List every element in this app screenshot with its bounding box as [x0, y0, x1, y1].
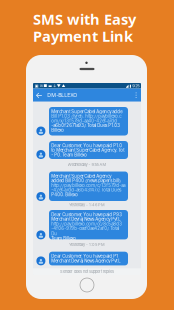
staticText: 9:25: [132, 83, 139, 88]
staticText: http://pay.billexo.com/cc/8c5a8d3: [51, 221, 122, 226]
staticText: -42ef-a7dd-a6b43f477/. Total Dues: [51, 187, 121, 193]
staticText: Yesterday - 1:46 PM: [69, 202, 105, 207]
staticText: DM-BLLEXO: [47, 92, 77, 98]
staticText: -a6b0f2671a93/. Total Dues P1.03: [51, 123, 120, 128]
staticText: -4f06-979b-ceef0ae42af0/. Total Du: [51, 226, 119, 236]
staticText: Merchant SuperCabel Agency adde: [51, 109, 122, 114]
staticText: Merchant Devraj News Agency Pvt L: [51, 258, 120, 264]
staticText: ▼: [57, 83, 61, 88]
staticText: Merchant Devraj News Agency Pvt L: [51, 217, 120, 222]
staticText: Dear Customer, You have paid P1.0: [51, 143, 122, 148]
staticText: P400. Billexo: [51, 192, 78, 197]
staticText: added Bill P400 (news papers bill): [51, 178, 121, 183]
staticText: ✉: [40, 83, 43, 88]
staticText: - P0. Team Billexo: [51, 152, 87, 157]
staticText: ↓: [53, 83, 56, 88]
staticText: ⋮: [133, 91, 140, 99]
button[interactable]: ←: [33, 88, 141, 101]
staticText: ▣: [35, 83, 39, 88]
staticText: ▲: [62, 83, 66, 88]
staticText: Wednesday - 9:55 AM: [67, 162, 106, 167]
staticText: to Merchant SuperCabel Agency. Tot: [51, 148, 124, 153]
staticText: Merchant SuperCabel Agency: [51, 173, 111, 179]
staticText: SMS with Easy: [33, 9, 136, 29]
staticText: Bill P1.03 (tvrel). http://paybillexo.c: [51, 114, 121, 119]
staticText: ▬: [48, 83, 52, 88]
staticText: http://pay.billexo.com/c/13f579d-aa: [51, 183, 125, 188]
staticText: Sender does not support replies: [60, 269, 114, 274]
staticText: ◢: [126, 83, 129, 88]
staticText: ■: [43, 83, 47, 88]
staticText: ←: [35, 90, 43, 100]
staticText: ▮: [129, 83, 131, 88]
staticText: Billexo: [51, 128, 64, 133]
staticText: om/x/13f579d-aa40-42ef-a7dd: [51, 118, 117, 123]
staticText: Dear Customer, You have paid P93: [51, 212, 122, 217]
staticText: Payment Link: [33, 26, 133, 46]
staticText: Dear Customer, You have paid P1: [51, 254, 118, 259]
staticText: Yesterday - 1:05 PM: [69, 242, 105, 247]
staticText: Team Billexo: [51, 236, 76, 241]
